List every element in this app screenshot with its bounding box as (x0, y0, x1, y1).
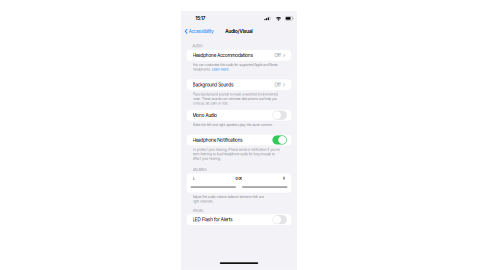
staticText: You can customize the audio for supporte… (220, 186, 480, 200)
staticText: Learn more. (285, 202, 344, 216)
staticText: headphones. (220, 202, 285, 216)
staticText: Background Sounds (220, 251, 359, 270)
staticText: AUDIO (220, 123, 253, 137)
button[interactable]: Accessibility (181, 64, 291, 96)
staticText: 15:17 (230, 26, 264, 46)
button[interactable]: Headphone Accommodations (181, 143, 480, 179)
staticText: Headphone Accommodations (220, 152, 425, 171)
staticText: Accessibility (207, 70, 291, 90)
button[interactable]: Background Sounds (181, 243, 480, 270)
